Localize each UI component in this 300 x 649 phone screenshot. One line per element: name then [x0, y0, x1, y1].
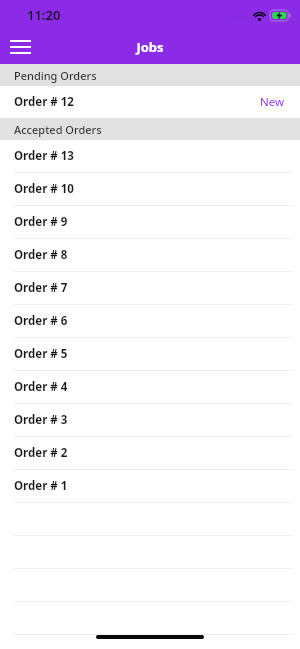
staticText: Order # 6 [14, 313, 68, 329]
staticText: Order # 8 [14, 247, 68, 263]
button[interactable]: Order # 3 [0, 404, 300, 436]
staticText: New [260, 94, 285, 110]
button[interactable]: Order # 13 [0, 140, 300, 172]
button[interactable]: Order # 8 [0, 239, 300, 271]
staticText: Order # 12 [14, 94, 74, 110]
staticText: Order # 13 [14, 148, 74, 164]
staticText: Accepted Orders [14, 122, 102, 137]
button[interactable]: Order # 2 [0, 437, 300, 469]
staticText: Order # 5 [14, 346, 68, 362]
staticText: Order # 1 [14, 478, 68, 494]
staticText: Jobs [0, 38, 300, 56]
button[interactable]: Order # 5 [0, 338, 300, 370]
button[interactable]: Open navigation menu [0, 30, 40, 64]
staticText: Order # 7 [14, 280, 68, 296]
staticText: Order # 2 [14, 445, 68, 461]
button[interactable]: Order # 1 [0, 470, 300, 502]
staticText: Order # 9 [14, 214, 68, 230]
button[interactable]: Order # 6 [0, 305, 300, 337]
staticText: Pending Orders [14, 68, 97, 83]
button[interactable]: Order # 4 [0, 371, 300, 403]
staticText: Order # 3 [14, 412, 68, 428]
button[interactable]: Order # 9 [0, 206, 300, 238]
staticText: Order # 4 [14, 379, 68, 395]
staticText: Order # 10 [14, 181, 74, 197]
staticText: 11:20 [27, 6, 61, 24]
button[interactable]: Order # 10 [0, 173, 300, 205]
button[interactable]: Order # 12 [0, 86, 300, 118]
button[interactable]: Order # 7 [0, 272, 300, 304]
